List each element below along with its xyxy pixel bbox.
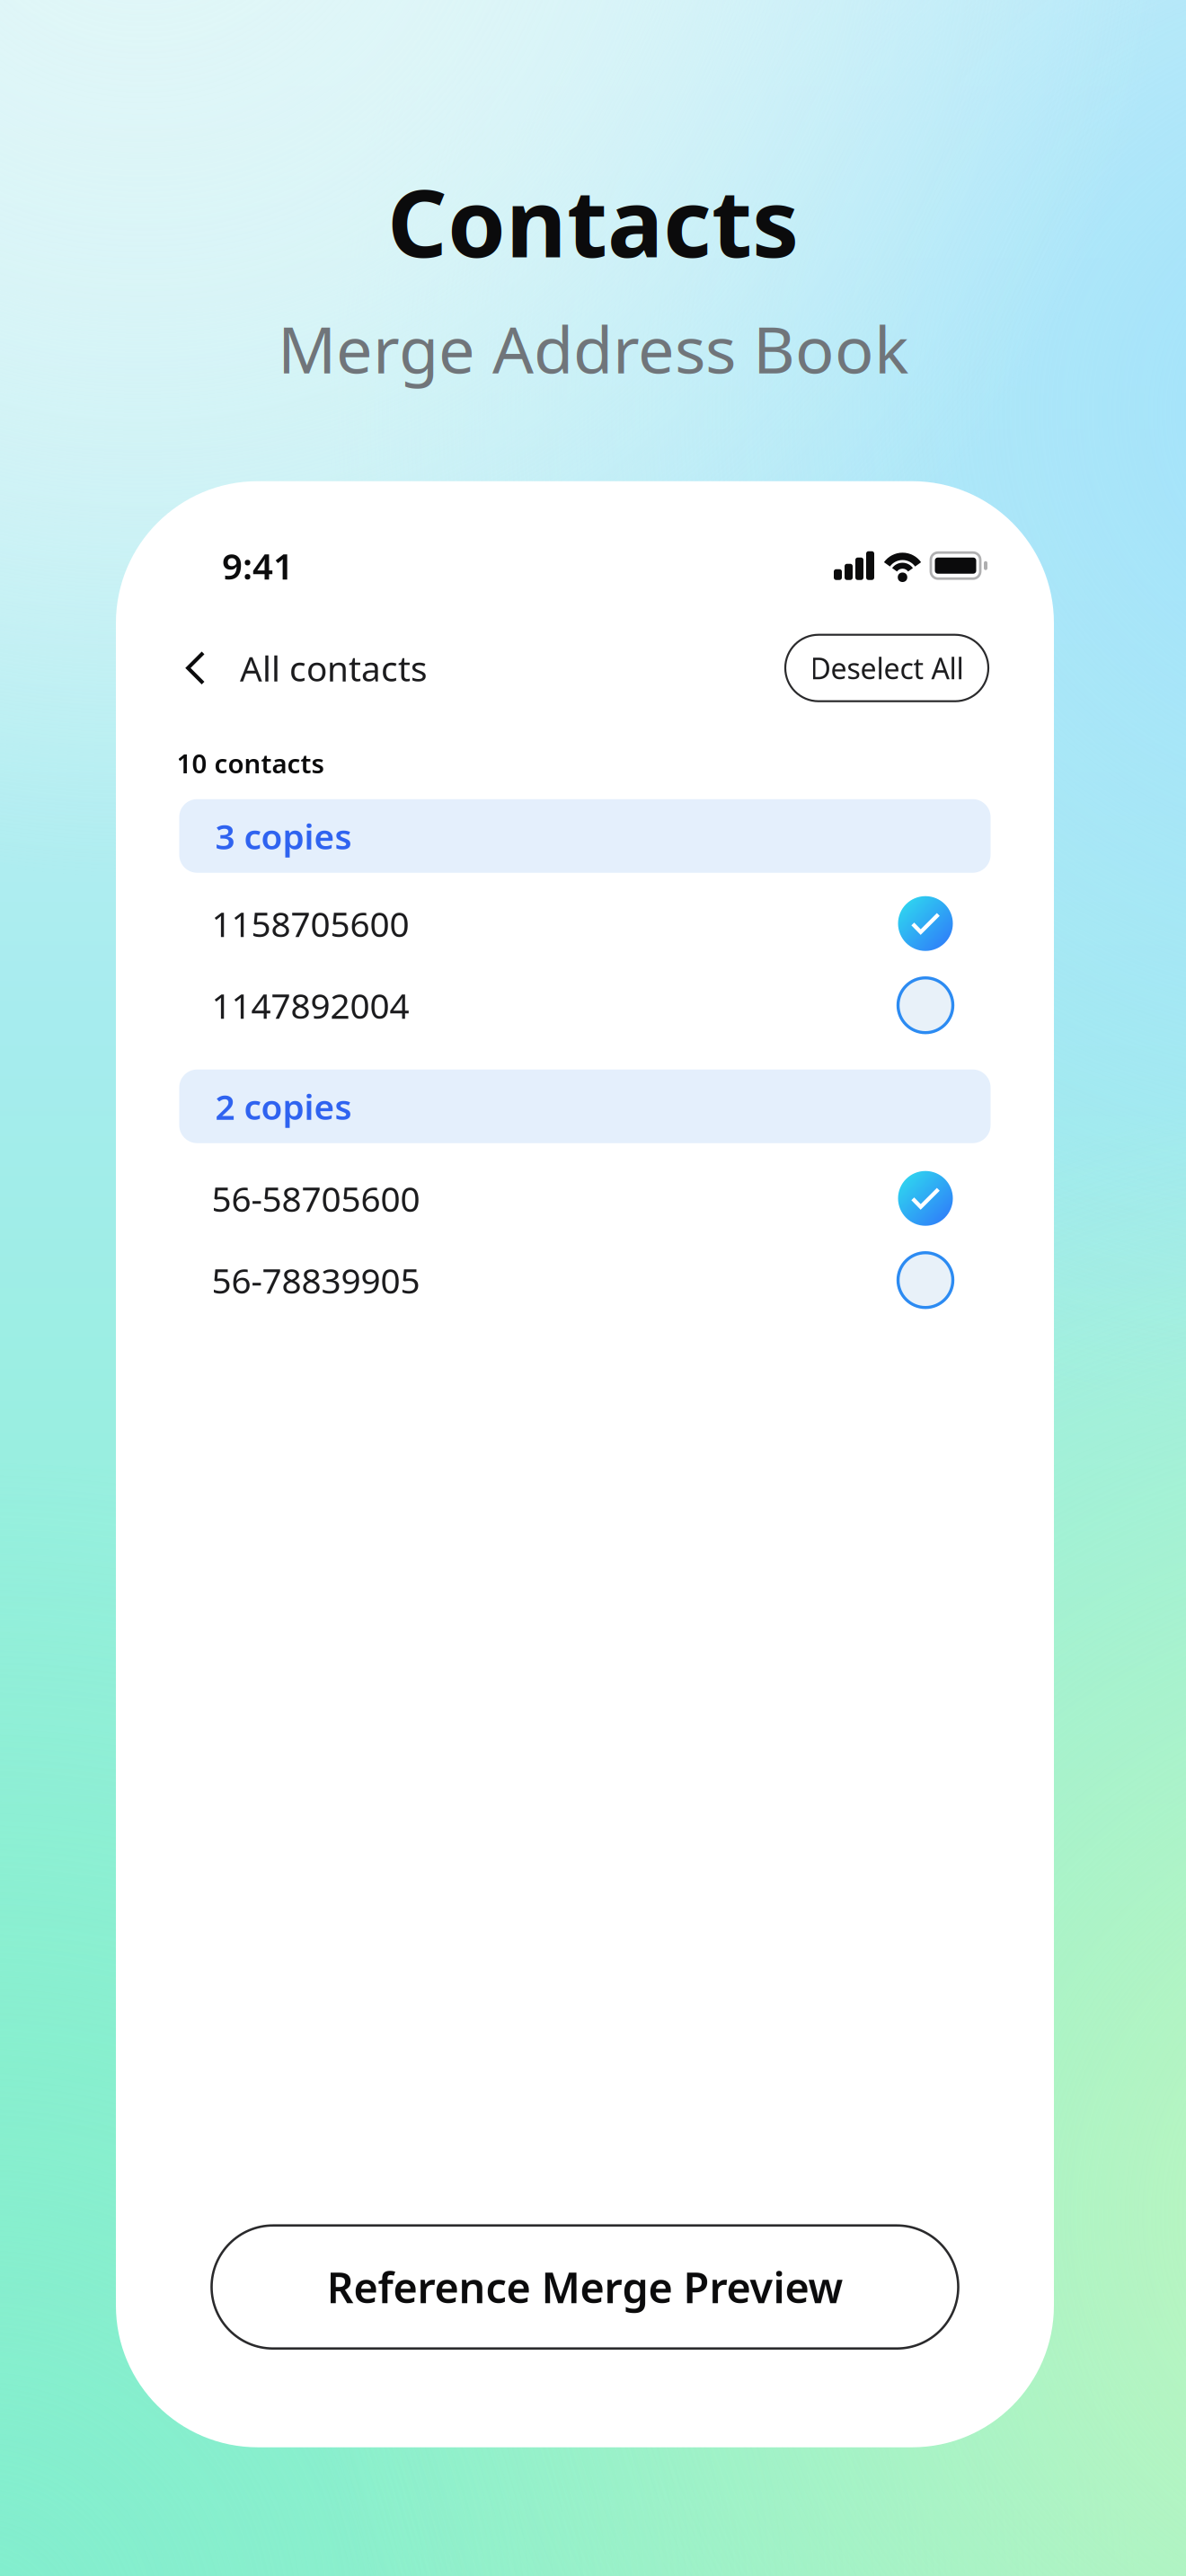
staticText: 9:41	[222, 542, 294, 589]
staticText: 1147892004	[212, 982, 409, 1028]
staticText: Merge Address Book	[278, 305, 908, 391]
staticText: Deselect All	[810, 649, 964, 687]
staticText: 2 copies	[215, 1083, 352, 1129]
button[interactable]: 56-78839905	[179, 1239, 991, 1321]
staticText: 56-78839905	[212, 1257, 420, 1303]
button[interactable]: 1158705600	[179, 883, 991, 964]
staticText: 1158705600	[212, 900, 409, 947]
button[interactable]: Deselect All	[785, 635, 988, 701]
button[interactable]: Reference Merge Preview	[212, 2225, 958, 2348]
staticText: 10 contacts	[177, 746, 324, 781]
staticText: 56-58705600	[212, 1175, 420, 1221]
staticText: Contacts	[387, 159, 799, 283]
button[interactable]: 56-58705600	[179, 1157, 991, 1239]
staticText: Reference Merge Preview	[327, 2259, 843, 2315]
staticText: All contacts	[240, 645, 428, 691]
staticText: 3 copies	[215, 813, 352, 859]
button[interactable]: Back to All contacts	[116, 625, 446, 711]
button[interactable]: 1147892004	[179, 964, 991, 1046]
